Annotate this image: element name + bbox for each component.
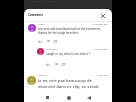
staticText: 11 months ago [92,23,108,26]
button[interactable]: Home [64,93,73,102]
staticText: Papa Coco [46,48,57,51]
staticText: Je ne vois pas beaucoup de diversité dan… [38,78,102,89]
staticText: Just sent and translated each of the com… [38,27,105,35]
staticText: Comments [28,13,43,17]
button[interactable]: Recent apps [43,93,52,102]
staticText: 1 year ago [97,74,108,77]
staticText: Chuck B [38,74,47,77]
button[interactable]: Chuck B [24,76,112,96]
button[interactable]: noobs [24,24,112,44]
staticText: 1 [50,63,52,66]
staticText: 1 [42,40,44,43]
button[interactable]: Close [98,11,107,20]
staticText: noobs [38,23,45,26]
button[interactable]: Back [84,93,93,102]
button[interactable]: Papa Coco [24,48,112,68]
staticText: 11 months ago [92,48,108,51]
staticText: Laugh or cry, what is our choice ? [46,52,106,56]
